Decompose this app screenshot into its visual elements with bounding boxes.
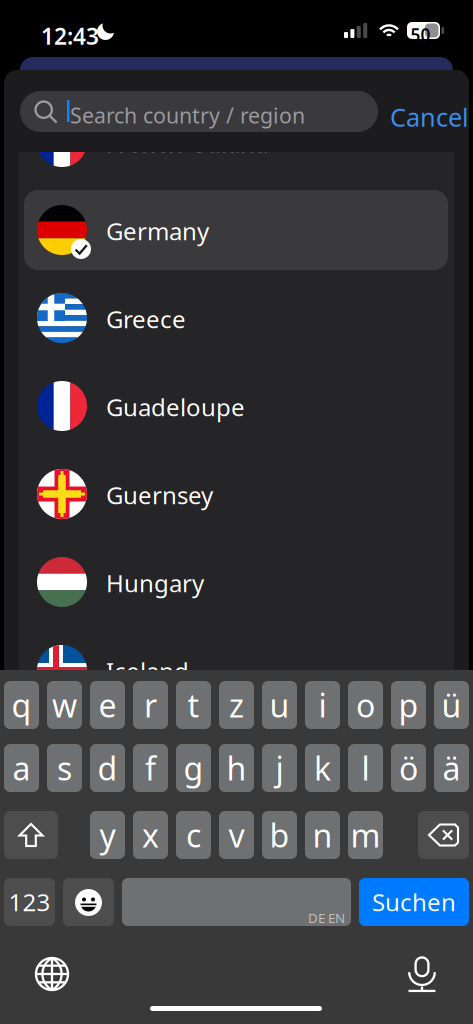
staticText: DE EN — [308, 909, 345, 927]
staticText: x — [142, 814, 159, 856]
staticText: k — [314, 747, 331, 789]
button[interactable]: g — [176, 744, 211, 792]
staticText: s — [57, 747, 72, 789]
staticText: French Guiana — [106, 127, 268, 159]
staticText: Cancel — [390, 100, 469, 134]
staticText: Iceland — [106, 655, 189, 687]
button[interactable]: ä — [434, 744, 469, 792]
button[interactable]: p — [391, 681, 426, 729]
staticText: Guadeloupe — [106, 391, 245, 423]
button[interactable]: w — [47, 681, 82, 729]
button[interactable]: i — [305, 681, 340, 729]
staticText: t — [187, 684, 199, 726]
staticText: i — [318, 684, 326, 726]
staticText: e — [98, 684, 116, 726]
staticText: q — [11, 684, 31, 726]
button[interactable]: Greece — [24, 278, 448, 358]
button[interactable]: k — [305, 744, 340, 792]
staticText: Guernsey — [106, 479, 213, 511]
button[interactable]: c — [176, 811, 211, 859]
staticText: g — [183, 747, 203, 789]
button[interactable]: Switch keyboard — [36, 958, 68, 990]
button[interactable]: s — [47, 744, 82, 792]
button[interactable]: Guadeloupe — [24, 366, 448, 446]
button[interactable]: Emoji — [63, 878, 114, 926]
staticText: p — [398, 684, 418, 726]
staticText: h — [226, 747, 246, 789]
staticText: d — [97, 747, 117, 789]
button[interactable]: d — [90, 744, 125, 792]
button[interactable]: x — [133, 811, 168, 859]
button[interactable]: r — [133, 681, 168, 729]
staticText: 12:43 — [41, 21, 99, 51]
button[interactable]: Germany — [24, 190, 448, 270]
staticText: 50 — [410, 23, 430, 46]
button[interactable]: Shift — [4, 811, 58, 859]
button[interactable]: n — [305, 811, 340, 859]
staticText: ö — [399, 747, 418, 789]
button[interactable]: e — [90, 681, 125, 729]
staticText: z — [229, 684, 244, 726]
button[interactable]: z — [219, 681, 254, 729]
button[interactable]: v — [219, 811, 254, 859]
staticText: o — [356, 684, 375, 726]
staticText: Suchen — [372, 886, 456, 918]
staticText: v — [228, 814, 244, 856]
staticText: Search country / region — [70, 101, 305, 129]
button[interactable]: t — [176, 681, 211, 729]
staticText: c — [186, 814, 201, 856]
button[interactable]: Space — [122, 878, 351, 926]
button[interactable]: m — [348, 811, 383, 859]
button[interactable]: u — [262, 681, 297, 729]
staticText: a — [12, 747, 30, 789]
staticText: Greece — [106, 303, 186, 335]
staticText: ä — [442, 747, 460, 789]
button[interactable]: l — [348, 744, 383, 792]
button[interactable]: French Guiana — [24, 102, 448, 182]
staticText: r — [144, 684, 157, 726]
button[interactable]: o — [348, 681, 383, 729]
button[interactable]: q — [4, 681, 39, 729]
staticText: u — [269, 684, 289, 726]
staticText: Hungary — [106, 567, 204, 599]
staticText: 123 — [8, 886, 50, 918]
staticText: ü — [441, 684, 461, 726]
button[interactable]: f — [133, 744, 168, 792]
staticText: f — [145, 747, 156, 789]
staticText: l — [361, 747, 369, 789]
button[interactable]: Delete — [418, 811, 469, 859]
button[interactable]: 123 — [4, 878, 55, 926]
button[interactable]: Cancel — [384, 91, 470, 132]
button[interactable]: j — [262, 744, 297, 792]
button[interactable]: Guernsey — [24, 454, 448, 534]
staticText: j — [275, 747, 283, 789]
button[interactable]: Iceland — [24, 630, 448, 710]
staticText: b — [269, 814, 289, 856]
button[interactable]: ö — [391, 744, 426, 792]
staticText: y — [99, 814, 115, 856]
staticText: n — [312, 814, 332, 856]
button[interactable]: Dictation — [406, 956, 438, 992]
button[interactable]: Suchen — [359, 878, 469, 926]
staticText: m — [350, 814, 380, 856]
button[interactable]: Hungary — [24, 542, 448, 622]
button[interactable]: ü — [434, 681, 469, 729]
button[interactable]: a — [4, 744, 39, 792]
button[interactable]: y — [90, 811, 125, 859]
staticText: Germany — [106, 215, 209, 247]
button[interactable]: b — [262, 811, 297, 859]
staticText: w — [52, 684, 77, 726]
button[interactable]: h — [219, 744, 254, 792]
